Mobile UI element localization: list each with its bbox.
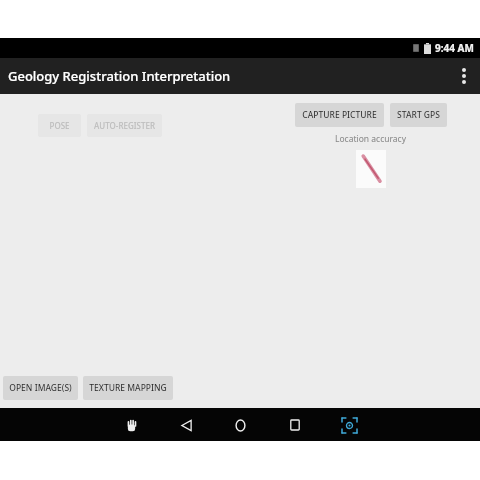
staticText: Location accuracy	[335, 133, 407, 145]
button[interactable]: CAPTURE PICTURE	[295, 103, 384, 127]
button[interactable]: TEXTURE MAPPING	[83, 376, 173, 400]
staticText: CAPTURE PICTURE	[302, 109, 377, 121]
staticText: 9:44 AM	[435, 41, 474, 55]
button[interactable]: Recent apps	[282, 412, 308, 438]
button[interactable]: AUTO-REGISTER	[87, 114, 162, 137]
staticText: TEXTURE MAPPING	[89, 382, 167, 394]
staticText: OPEN IMAGE(S)	[9, 382, 72, 394]
staticText: AUTO-REGISTER	[94, 120, 155, 131]
button[interactable]: START GPS	[390, 103, 447, 127]
staticText: Geology Registration Interpretation	[8, 67, 231, 85]
button[interactable]: POSE	[38, 114, 81, 137]
button[interactable]: Home	[227, 412, 253, 438]
button[interactable]: More options	[448, 60, 480, 92]
staticText: POSE	[49, 120, 70, 131]
button[interactable]: Back	[173, 412, 199, 438]
button[interactable]: OPEN IMAGE(S)	[3, 376, 78, 400]
button[interactable]: Gesture	[118, 412, 144, 438]
staticText: START GPS	[397, 109, 440, 121]
button[interactable]: Screenshot	[336, 412, 362, 438]
button[interactable]: Captured image preview	[356, 150, 386, 188]
